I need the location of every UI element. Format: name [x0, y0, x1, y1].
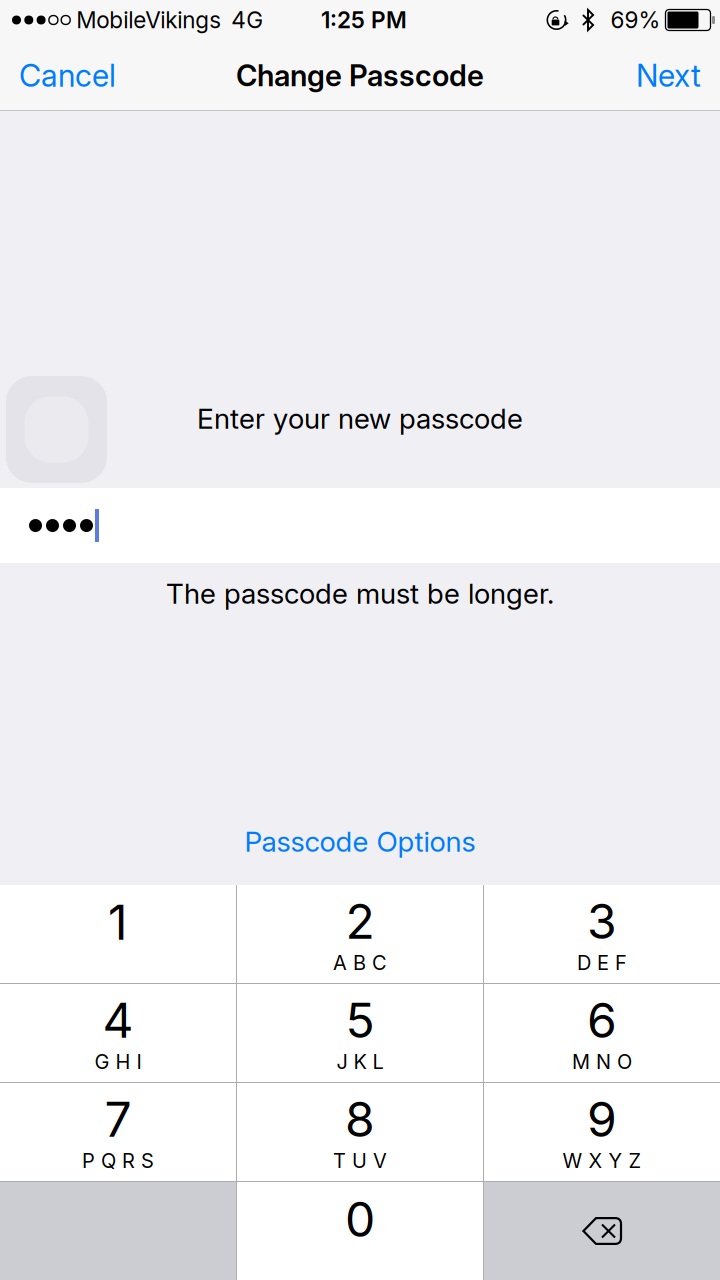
button[interactable]: 6 [484, 984, 720, 1082]
button[interactable]: 0 [237, 1182, 483, 1280]
staticText: 7 [104, 1091, 131, 1148]
button[interactable]: 7 [0, 1083, 236, 1181]
staticText: 2 [345, 893, 374, 950]
staticText: D E F [577, 951, 627, 975]
staticText: 69% [610, 7, 660, 33]
button[interactable]: 3 [484, 885, 720, 983]
staticText: 5 [345, 992, 374, 1049]
button[interactable]: 5 [237, 984, 483, 1082]
staticText: 3 [587, 893, 617, 950]
button[interactable]: 1 [0, 885, 236, 983]
staticText: Passcode Options [244, 825, 475, 858]
button[interactable]: 2 [237, 885, 483, 983]
staticText: 9 [587, 1091, 617, 1148]
staticText: 4G [231, 7, 263, 33]
button[interactable]: Cancel [0, 40, 138, 111]
staticText: Cancel [19, 57, 116, 94]
staticText: Enter your new passcode [197, 402, 523, 435]
button[interactable]: Passcode Options [220, 813, 499, 870]
button[interactable]: Next [614, 40, 720, 111]
staticText: A B C [333, 951, 387, 975]
staticText: 1:25 PM [321, 7, 407, 33]
staticText: Change Passcode [236, 58, 484, 93]
staticText: MobileVikings [76, 7, 221, 33]
staticText: 0 [345, 1191, 375, 1248]
staticText: 1 [108, 894, 128, 951]
staticText: W X Y Z [562, 1149, 641, 1173]
staticText: P Q R S [82, 1149, 154, 1173]
button[interactable]: 9 [484, 1083, 720, 1181]
staticText: J K L [336, 1050, 383, 1074]
staticText: T U V [333, 1149, 387, 1173]
button[interactable]: 8 [237, 1083, 483, 1181]
staticText: 6 [587, 992, 617, 1049]
staticText: M N O [572, 1050, 632, 1074]
staticText: 8 [345, 1091, 375, 1148]
staticText: The passcode must be longer. [166, 577, 554, 610]
staticText: G H I [94, 1050, 141, 1074]
button[interactable]: 4 [0, 984, 236, 1082]
staticText: 4 [102, 992, 133, 1049]
staticText: Next [636, 57, 701, 94]
button[interactable]: Delete [484, 1182, 720, 1280]
